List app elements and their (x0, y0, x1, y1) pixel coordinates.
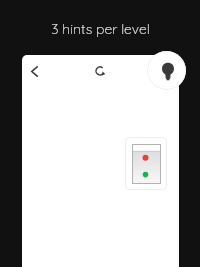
button[interactable]: Switch panel (125, 137, 167, 190)
button[interactable]: Hint (147, 51, 186, 90)
button[interactable]: Refresh (88, 59, 112, 83)
button[interactable]: Back (22, 59, 46, 83)
staticText: 3 hints per level (51, 20, 150, 38)
